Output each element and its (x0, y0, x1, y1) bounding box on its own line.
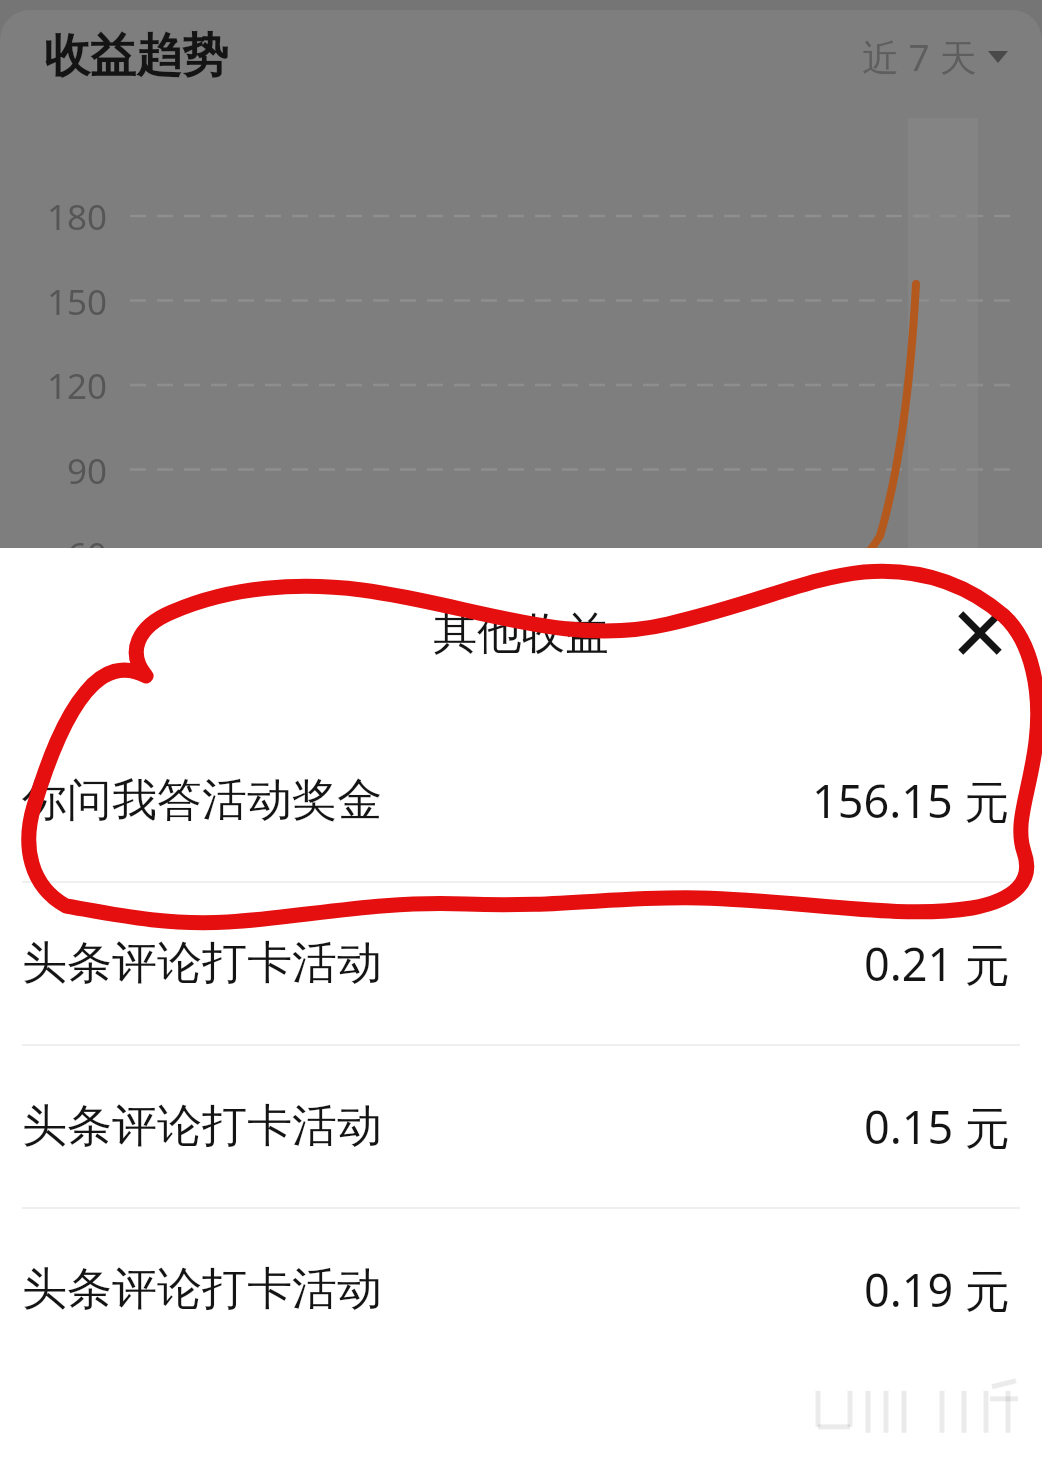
staticText: 156.15 元 (812, 770, 1010, 831)
staticText: 近 7 天 (862, 31, 977, 82)
button[interactable]: 头条评论打卡活动 (0, 883, 1042, 1044)
button[interactable]: 头条评论打卡活动 (0, 1209, 1042, 1370)
button[interactable]: 头条评论打卡活动 (0, 1046, 1042, 1207)
staticText: 150 (47, 278, 108, 326)
staticText: 头条评论打卡活动 (22, 1261, 382, 1318)
staticText: 头条评论打卡活动 (22, 1098, 382, 1155)
staticText: 其他收益 (433, 606, 609, 661)
staticText: 60 (67, 531, 108, 579)
staticText: 0.19 元 (864, 1259, 1010, 1320)
button[interactable]: 近 7 天 (862, 31, 1008, 82)
staticText: 你问我答活动奖金 (22, 772, 382, 829)
staticText: 180 (47, 193, 108, 241)
staticText: 头条评论打卡活动 (22, 935, 382, 992)
button[interactable]: 关闭 (934, 587, 1026, 679)
staticText: 0.21 元 (864, 933, 1010, 994)
staticText: 0.15 元 (864, 1096, 1010, 1157)
staticText: 收益趋势 (44, 27, 228, 85)
staticText: 90 (67, 447, 108, 495)
button[interactable]: 你问我答活动奖金 (0, 720, 1042, 881)
staticText: 120 (47, 362, 108, 410)
